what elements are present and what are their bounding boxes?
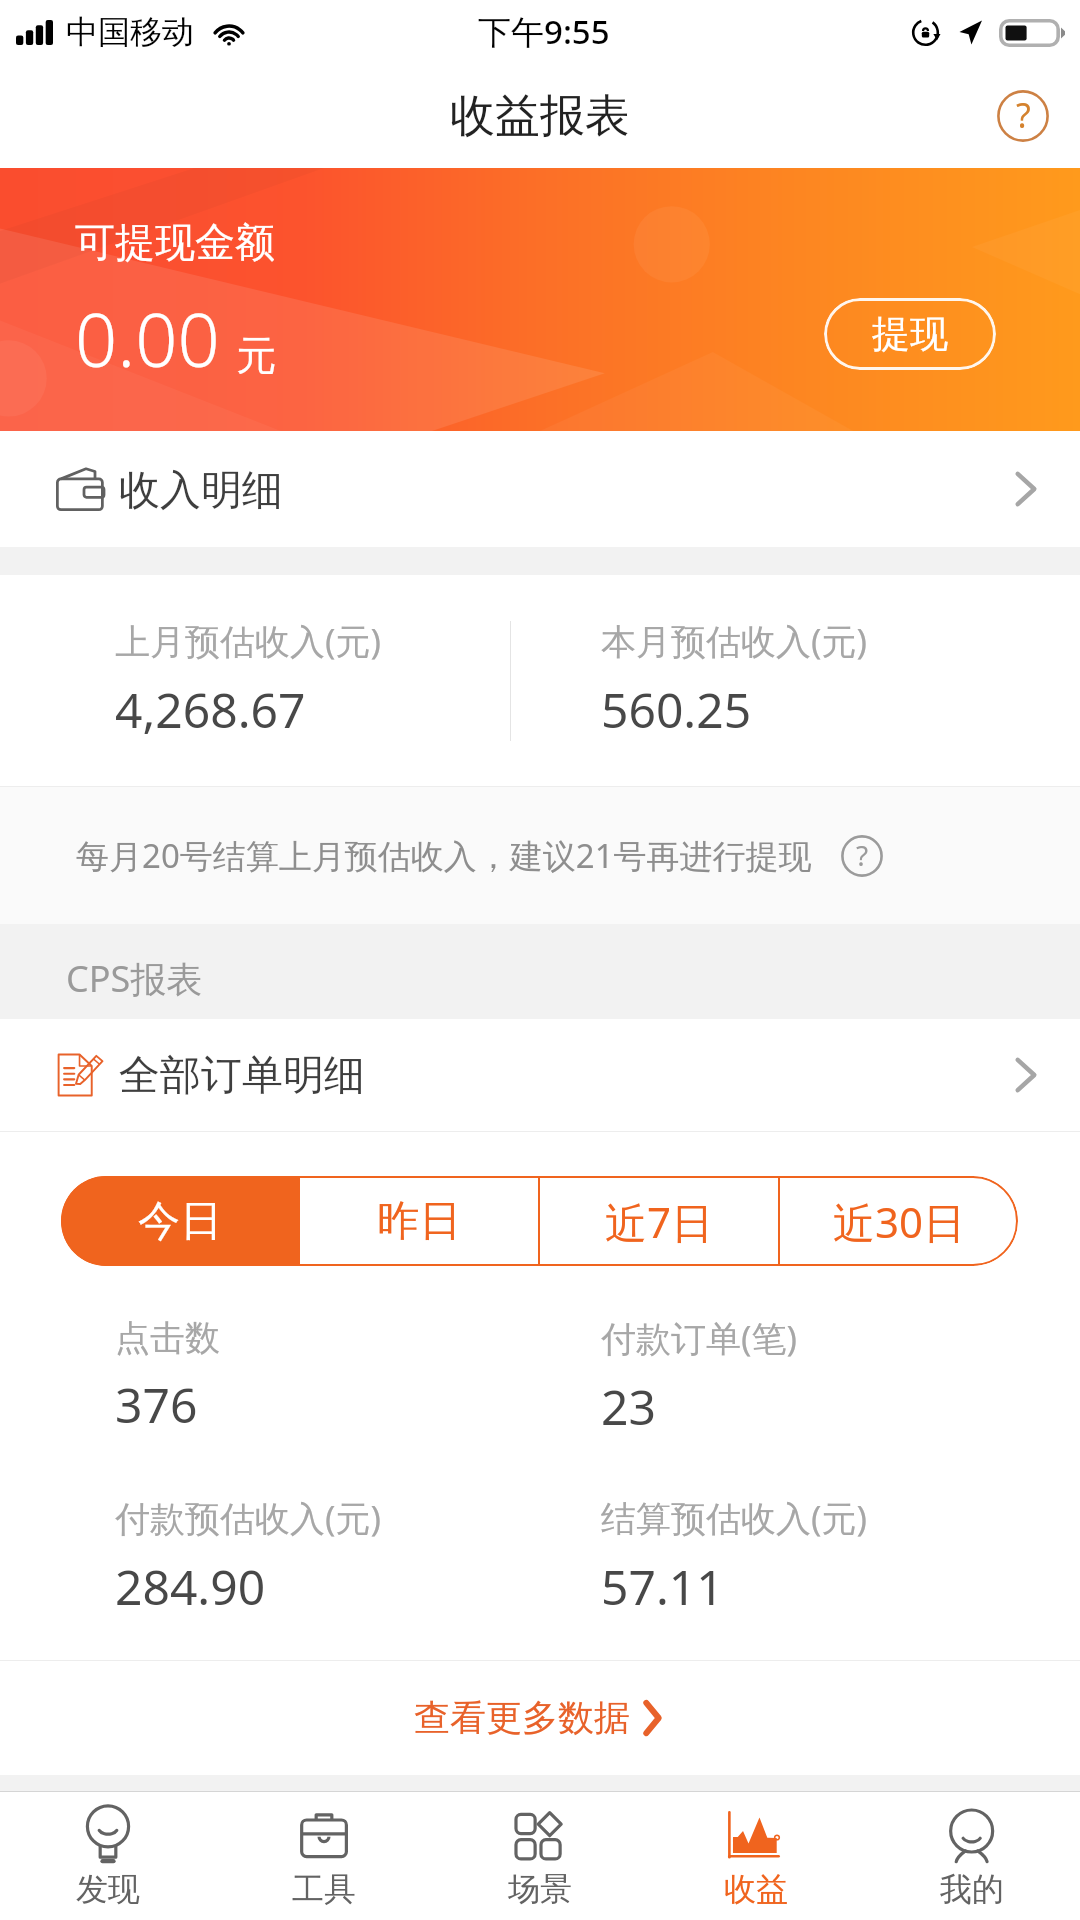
staticText: 每月20号结算上月预估收入，建议21号再进行提现 bbox=[76, 833, 812, 878]
staticText: 结算预估收入(元) bbox=[601, 1494, 868, 1542]
button[interactable]: Help bbox=[992, 85, 1054, 147]
staticText: 中国移动 bbox=[66, 12, 194, 52]
staticText: 560.25 bbox=[601, 677, 752, 742]
staticText: 付款预估收入(元) bbox=[115, 1494, 382, 1542]
button[interactable]: 今日 bbox=[61, 1176, 298, 1266]
button[interactable]: 我的 bbox=[864, 1792, 1080, 1920]
staticText: 上月预估收入(元) bbox=[115, 617, 382, 665]
button[interactable]: 收益 bbox=[648, 1792, 864, 1920]
staticText: CPS报表 bbox=[66, 954, 203, 1003]
staticText: 376 bbox=[115, 1372, 198, 1437]
staticText: 全部订单明细 bbox=[119, 1050, 365, 1102]
staticText: 收益报表 bbox=[450, 88, 630, 145]
staticText: 收入明细 bbox=[119, 465, 283, 517]
button[interactable]: 发现 bbox=[0, 1792, 216, 1920]
staticText: 昨日 bbox=[377, 1195, 461, 1248]
staticText: ? bbox=[856, 836, 869, 874]
staticText: 工具 bbox=[292, 1869, 356, 1909]
button[interactable]: 查看更多数据 bbox=[0, 1661, 1080, 1775]
button[interactable]: 近30日 bbox=[780, 1176, 1018, 1266]
staticText: 4,268.67 bbox=[115, 677, 306, 742]
staticText: 0.00 bbox=[75, 288, 220, 389]
staticText: 近7日 bbox=[605, 1193, 714, 1250]
button[interactable]: 全部订单明细 bbox=[0, 1019, 1080, 1131]
button[interactable]: 收入明细 bbox=[0, 431, 1080, 547]
button[interactable]: 提现 bbox=[824, 298, 996, 370]
button[interactable]: 场景 bbox=[432, 1792, 648, 1920]
staticText: 收益 bbox=[724, 1869, 788, 1909]
staticText: 付款订单(笔) bbox=[601, 1314, 798, 1362]
staticText: ? bbox=[1016, 92, 1031, 138]
staticText: 提现 bbox=[872, 310, 948, 358]
button[interactable]: 工具 bbox=[216, 1792, 432, 1920]
staticText: 下午9:55 bbox=[478, 9, 610, 54]
staticText: 点击数 bbox=[115, 1316, 220, 1360]
staticText: 元 bbox=[236, 330, 276, 380]
staticText: 23 bbox=[601, 1374, 656, 1439]
staticText: 发现 bbox=[76, 1869, 140, 1909]
staticText: 我的 bbox=[940, 1869, 1004, 1909]
staticText: 本月预估收入(元) bbox=[601, 617, 868, 665]
button[interactable]: Info bbox=[839, 833, 885, 879]
staticText: 近30日 bbox=[833, 1193, 966, 1250]
button[interactable]: 昨日 bbox=[300, 1176, 538, 1266]
staticText: 今日 bbox=[138, 1195, 222, 1248]
staticText: 57.11 bbox=[601, 1554, 724, 1619]
staticText: 场景 bbox=[508, 1869, 572, 1909]
staticText: 可提现金额 bbox=[75, 217, 275, 267]
staticText: 查看更多数据 bbox=[414, 1695, 630, 1740]
button[interactable]: 近7日 bbox=[540, 1176, 778, 1266]
staticText: 284.90 bbox=[115, 1554, 266, 1619]
